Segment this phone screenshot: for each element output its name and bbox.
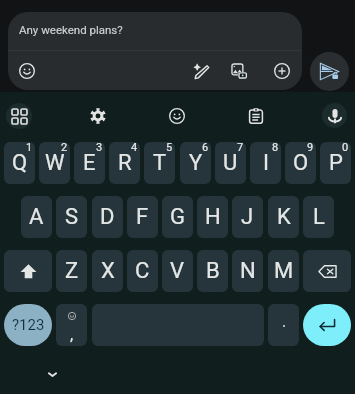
staticText: N bbox=[240, 258, 256, 284]
staticText: 1 bbox=[26, 142, 33, 154]
button[interactable]: D bbox=[92, 196, 123, 238]
staticText: 0 bbox=[342, 142, 349, 154]
button[interactable]: Enter bbox=[303, 304, 351, 346]
staticText: 6 bbox=[202, 142, 209, 154]
button[interactable]: Backspace bbox=[303, 250, 351, 292]
button[interactable]: ?123 bbox=[4, 304, 52, 346]
button[interactable]: Shift bbox=[4, 250, 52, 292]
staticText: R bbox=[118, 150, 132, 176]
staticText: 9 bbox=[307, 142, 314, 154]
staticText: Z bbox=[65, 258, 79, 284]
button[interactable]: Any weekend plans? bbox=[8, 12, 302, 90]
button[interactable]: I bbox=[250, 142, 281, 184]
staticText: , bbox=[70, 325, 74, 344]
staticText: 4 bbox=[131, 142, 138, 154]
button[interactable]: G bbox=[162, 196, 193, 238]
button[interactable]: M bbox=[268, 250, 299, 292]
staticText: 2 bbox=[61, 142, 68, 154]
button[interactable]: H bbox=[197, 196, 228, 238]
staticText: P bbox=[329, 150, 343, 176]
staticText: M bbox=[274, 258, 294, 284]
button[interactable]: Apps bbox=[6, 103, 32, 129]
button[interactable]: T bbox=[144, 142, 175, 184]
button[interactable]: V bbox=[162, 250, 193, 292]
button[interactable]: S bbox=[56, 196, 87, 238]
button[interactable]: O bbox=[285, 142, 316, 184]
button[interactable]: J bbox=[232, 196, 263, 238]
staticText: E bbox=[83, 150, 96, 176]
staticText: H bbox=[205, 204, 221, 230]
button[interactable]: R bbox=[109, 142, 140, 184]
staticText: O bbox=[293, 150, 309, 176]
button[interactable]: Z bbox=[56, 250, 87, 292]
staticText: B bbox=[206, 258, 220, 284]
button[interactable]: Y bbox=[180, 142, 211, 184]
staticText: 5 bbox=[166, 142, 173, 154]
staticText: J bbox=[241, 204, 254, 230]
button[interactable]: L bbox=[303, 196, 334, 238]
button[interactable]: X bbox=[92, 250, 123, 292]
button[interactable]: Emoji bbox=[161, 100, 193, 132]
staticText: 8 bbox=[272, 142, 279, 154]
button[interactable]: A bbox=[21, 196, 52, 238]
button[interactable]: F bbox=[127, 196, 158, 238]
button[interactable]: Hide keyboard bbox=[37, 359, 68, 390]
staticText: W bbox=[45, 150, 65, 176]
staticText: Y bbox=[189, 150, 203, 176]
staticText: X bbox=[101, 258, 115, 284]
button[interactable]: Emoji bbox=[11, 55, 43, 87]
staticText: S bbox=[65, 204, 79, 230]
button[interactable]: Magic compose bbox=[193, 63, 209, 79]
button[interactable]: Send bbox=[310, 52, 349, 91]
staticText: Q bbox=[12, 150, 28, 176]
staticText: ?123 bbox=[12, 316, 45, 334]
button[interactable]: W bbox=[39, 142, 70, 184]
staticText: I bbox=[263, 150, 269, 176]
button[interactable]: P bbox=[320, 142, 351, 184]
button[interactable]: Gallery bbox=[231, 63, 247, 79]
staticText: 3 bbox=[96, 142, 103, 154]
button[interactable]: Q bbox=[4, 142, 35, 184]
staticText: Any weekend plans? bbox=[19, 23, 123, 36]
button[interactable]: Period bbox=[268, 304, 299, 346]
button[interactable]: Clipboard bbox=[240, 100, 272, 132]
button[interactable]: B bbox=[197, 250, 228, 292]
staticText: D bbox=[100, 204, 115, 230]
staticText: F bbox=[136, 204, 149, 230]
button[interactable]: Voice input bbox=[322, 103, 347, 128]
staticText: G bbox=[170, 204, 185, 230]
button[interactable]: K bbox=[268, 196, 299, 238]
staticText: T bbox=[153, 150, 167, 176]
button[interactable]: E bbox=[74, 142, 105, 184]
button[interactable]: U bbox=[215, 142, 246, 184]
staticText: C bbox=[135, 258, 150, 284]
staticText: A bbox=[29, 204, 44, 230]
staticText: U bbox=[223, 150, 238, 176]
button[interactable]: More bbox=[274, 63, 290, 79]
staticText: L bbox=[313, 204, 325, 230]
staticText: V bbox=[170, 258, 185, 284]
button[interactable]: Comma bbox=[56, 304, 87, 346]
button[interactable]: C bbox=[127, 250, 158, 292]
button[interactable]: Settings bbox=[82, 100, 114, 132]
staticText: 7 bbox=[237, 142, 244, 154]
button[interactable]: N bbox=[232, 250, 263, 292]
staticText: K bbox=[277, 204, 291, 230]
